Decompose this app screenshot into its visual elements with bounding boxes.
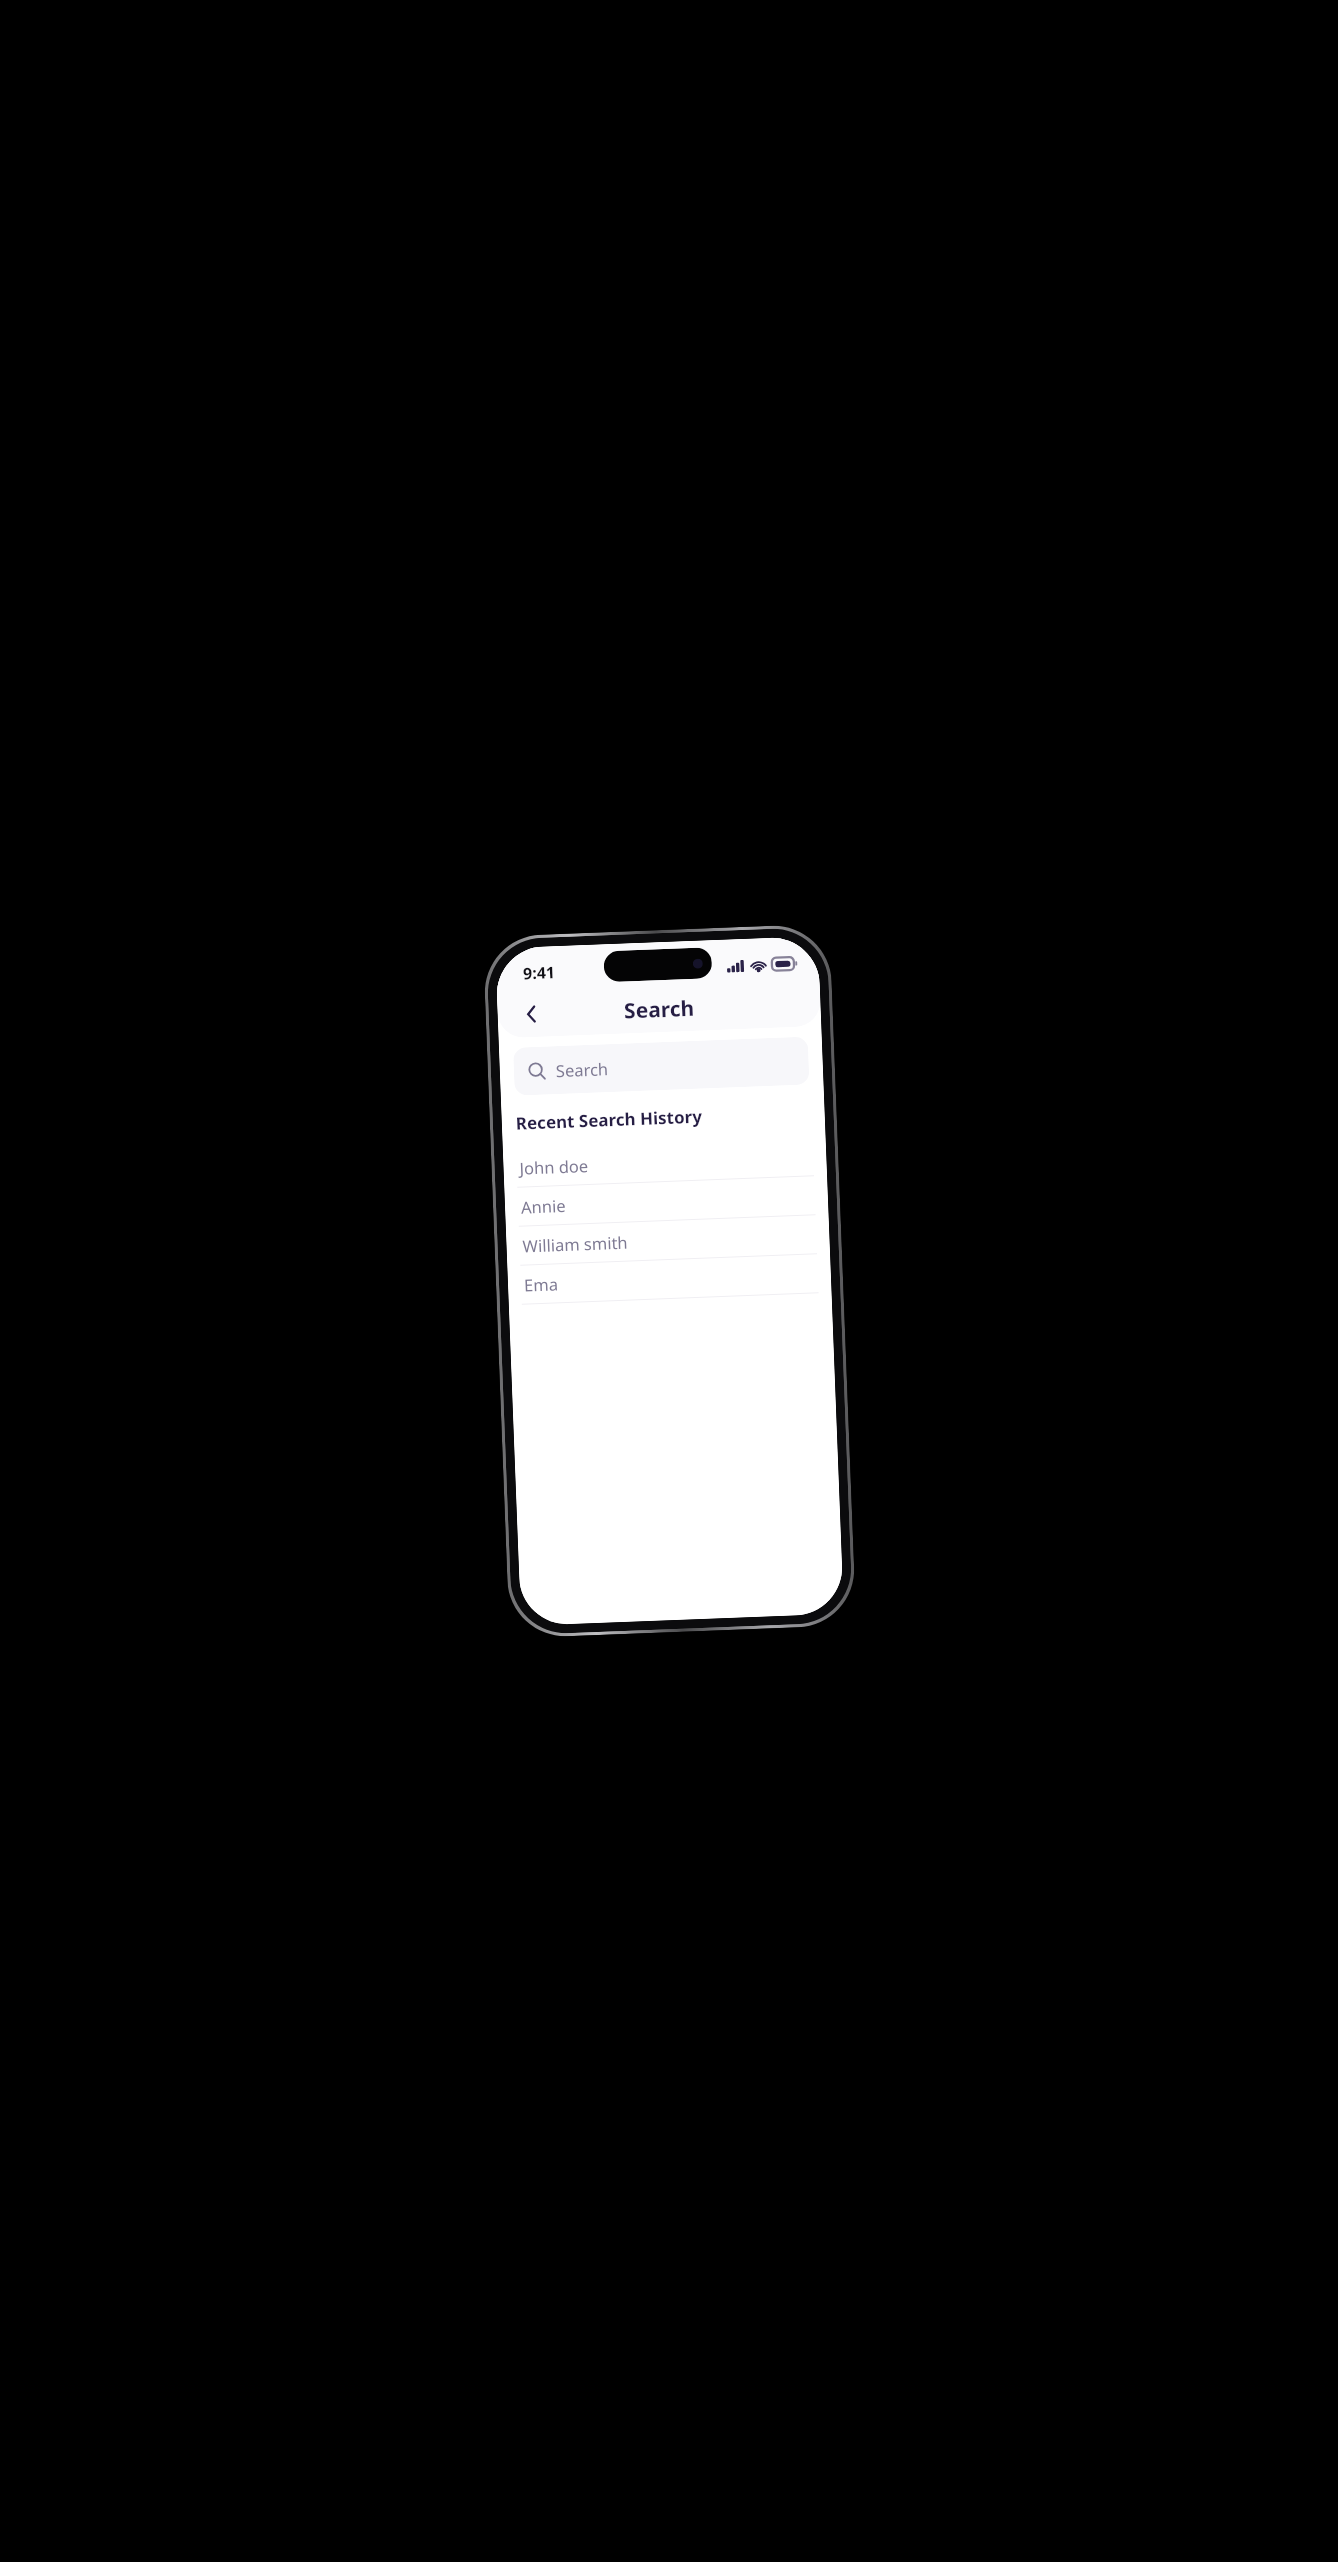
- button[interactable]: Back: [509, 991, 554, 1037]
- staticText: John doe: [519, 1154, 589, 1179]
- staticText: William smith: [522, 1231, 629, 1257]
- staticText: Recent Search History: [515, 1105, 703, 1135]
- staticText: 9:41: [523, 961, 555, 984]
- button[interactable]: William smith: [506, 1215, 830, 1266]
- staticText: Search: [555, 1057, 609, 1081]
- button[interactable]: Search: [513, 1036, 809, 1096]
- staticText: Annie: [521, 1194, 566, 1218]
- staticText: Ema: [524, 1272, 558, 1296]
- button[interactable]: Ema: [507, 1254, 832, 1305]
- button[interactable]: Annie: [504, 1176, 829, 1227]
- button[interactable]: John doe: [503, 1137, 827, 1188]
- staticText: Search: [623, 994, 695, 1025]
